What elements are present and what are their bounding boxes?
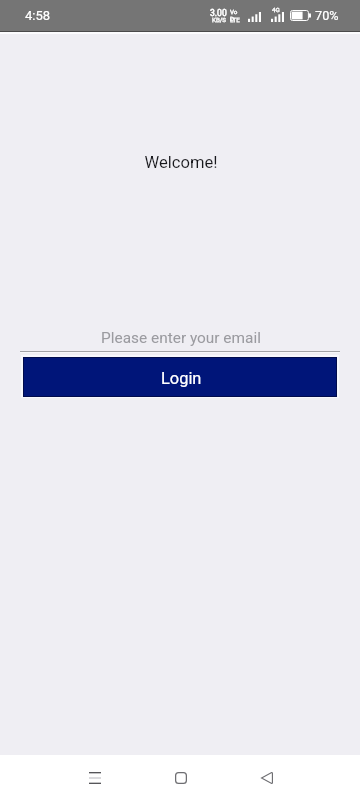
button[interactable]: Login (24, 358, 336, 396)
staticText: VoD (230, 8, 240, 21)
staticText: Welcome! (1, 153, 360, 172)
staticText: 4G (272, 6, 280, 13)
staticText: Please enter your email (21, 329, 341, 347)
button[interactable]: Home (151, 755, 211, 800)
staticText: 3.00 (210, 8, 227, 18)
staticText: 70% (315, 8, 339, 23)
button[interactable]: Recent apps (65, 755, 125, 800)
staticText: LTE (230, 16, 240, 23)
staticText: Login (161, 369, 202, 388)
staticText: 4:58 (25, 8, 51, 23)
button[interactable]: Please enter your email (20, 329, 340, 353)
button[interactable]: Back (237, 755, 297, 800)
staticText: KB/S (212, 16, 226, 23)
